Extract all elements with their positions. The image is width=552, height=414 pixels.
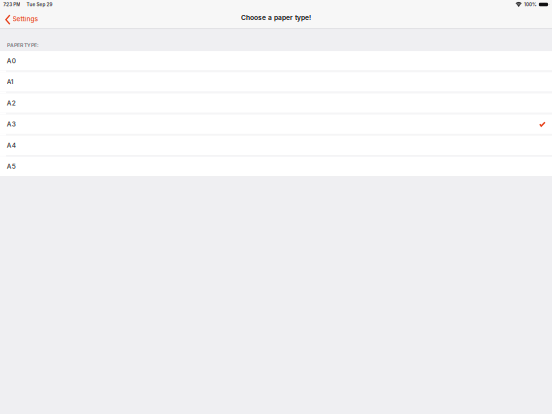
staticText: 7:23 PM	[3, 2, 20, 7]
staticText: A2	[7, 99, 16, 107]
button[interactable]: Back to Settings	[0, 12, 44, 27]
button[interactable]: A3	[0, 114, 552, 134]
staticText: A4	[7, 141, 16, 149]
button[interactable]: A5	[0, 157, 552, 176]
button[interactable]: A2	[0, 93, 552, 113]
button[interactable]: A4	[0, 136, 552, 155]
staticText: Settings	[12, 15, 38, 23]
staticText: A1	[7, 78, 14, 86]
staticText: PAPER TYPE:	[7, 42, 39, 48]
staticText: 100%	[524, 2, 537, 7]
staticText: A0	[7, 57, 16, 65]
staticText: A3	[7, 120, 16, 128]
staticText: Choose a paper type!	[241, 13, 311, 22]
staticText: A5	[7, 162, 16, 170]
button[interactable]: A0	[0, 51, 552, 70]
staticText: Tue Sep 29	[27, 2, 53, 7]
button[interactable]: A1	[0, 72, 552, 92]
